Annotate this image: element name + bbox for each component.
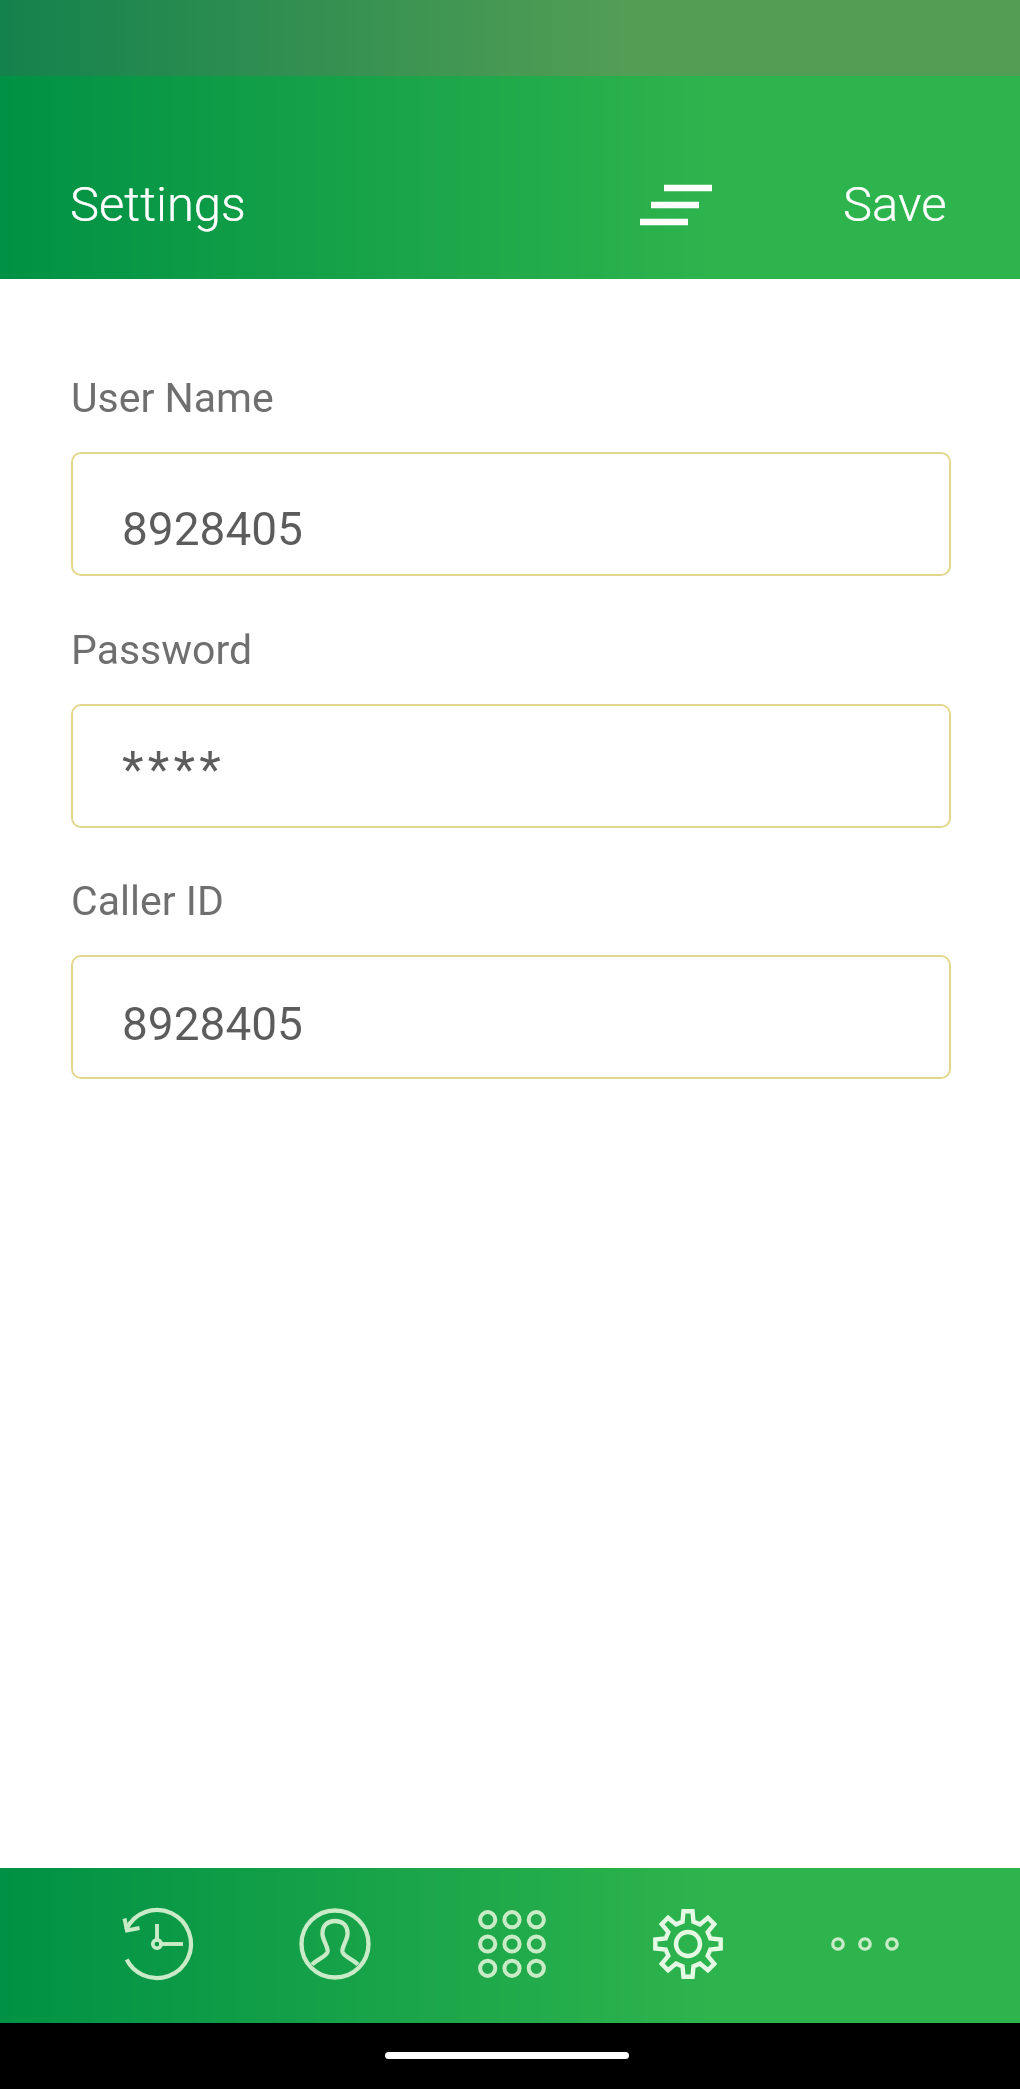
button[interactable]: **** [71, 704, 951, 828]
staticText: Settings [70, 176, 246, 233]
staticText: **** [122, 741, 225, 800]
button[interactable]: More [814, 1893, 916, 1995]
button[interactable]: Save [829, 152, 961, 256]
button[interactable]: Settings [637, 1893, 739, 1995]
staticText: User Name [71, 374, 274, 422]
button[interactable]: Recent calls [106, 1893, 208, 1995]
staticText: Save [843, 176, 947, 233]
button[interactable]: 8928405 [71, 452, 951, 576]
button[interactable]: Contacts [284, 1893, 386, 1995]
button[interactable]: Filter [618, 156, 724, 252]
button[interactable]: 8928405 [71, 955, 951, 1079]
staticText: Password [71, 626, 253, 674]
staticText: 8928405 [122, 502, 303, 556]
staticText: Caller ID [71, 877, 224, 925]
button[interactable]: Settings [56, 152, 260, 256]
staticText: 8928405 [122, 997, 303, 1051]
button[interactable]: Dialpad [461, 1893, 563, 1995]
